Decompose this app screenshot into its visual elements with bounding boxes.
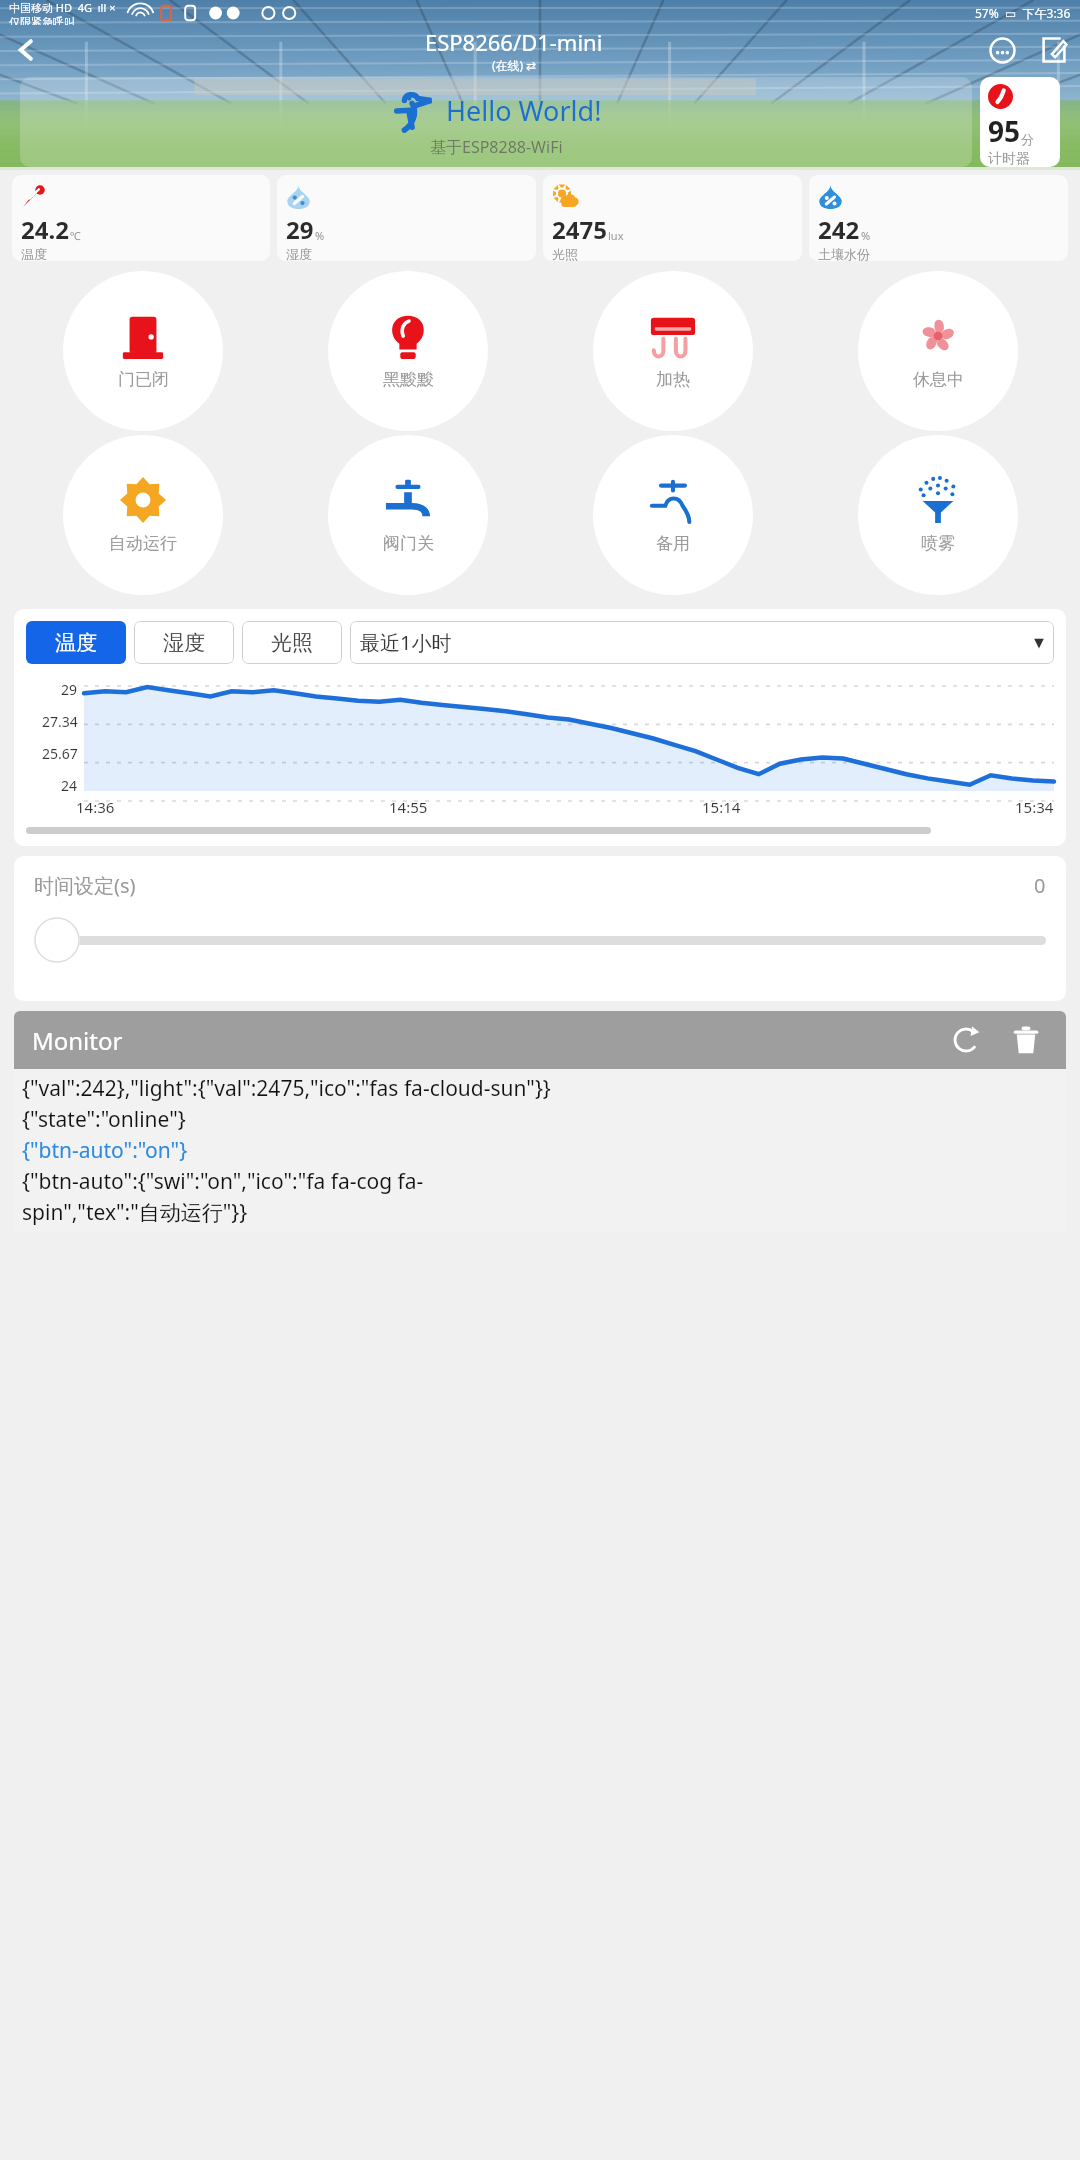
staticText: % — [861, 228, 871, 243]
button[interactable]: 加热 — [593, 271, 753, 431]
staticText: {"btn-auto":{"swi":"on","ico":"fa fa-cog… — [22, 1167, 424, 1196]
button[interactable]: 门已闭 — [63, 271, 223, 431]
staticText: Hello World! — [446, 92, 602, 129]
staticText: 15:34 — [1015, 797, 1054, 817]
staticText: lux — [608, 228, 624, 243]
button[interactable]: 自动运行 — [63, 435, 223, 595]
staticText: spin","tex":"自动运行"}} — [22, 1198, 248, 1227]
button[interactable]: 黑黢黢 — [328, 271, 488, 431]
staticText: ESP8266/D1-mini — [425, 27, 603, 57]
staticText: 黑黢黢 — [383, 369, 434, 390]
button[interactable]: 24.2 — [12, 175, 270, 261]
staticText: 29 — [286, 213, 314, 246]
staticText: 14:36 — [76, 797, 115, 817]
staticText: 光照 — [271, 630, 313, 656]
staticText: 2475 — [552, 213, 607, 246]
button[interactable]: 29 — [277, 175, 536, 261]
staticText: 自动运行 — [109, 533, 177, 554]
button[interactable]: 喷雾 — [858, 435, 1018, 595]
staticText: 29 — [61, 680, 78, 699]
staticText: 休息中 — [913, 369, 964, 390]
staticText: 温度 — [21, 246, 47, 261]
button[interactable]: 光照 — [242, 621, 342, 664]
staticText: 24 — [61, 776, 78, 795]
button[interactable]: Edit — [1028, 24, 1080, 76]
staticText: 14:55 — [389, 797, 428, 817]
staticText: 中国移动 HD 4G ıll × — [9, 0, 116, 15]
button[interactable]: More options — [976, 24, 1028, 76]
staticText: 备用 — [656, 533, 690, 554]
staticText: ▼ — [1034, 635, 1044, 650]
staticText: 喷雾 — [921, 533, 955, 554]
staticText: {"btn-auto":"on"} — [22, 1136, 188, 1165]
button[interactable] — [34, 917, 1046, 963]
staticText: 25.67 — [42, 744, 78, 763]
staticText: (在线) ⇄ — [492, 57, 537, 73]
staticText: 加热 — [656, 369, 690, 390]
button[interactable]: Back — [0, 24, 52, 76]
staticText: 阀门关 — [383, 533, 434, 554]
staticText: 温度 — [55, 630, 97, 656]
button[interactable]: 242 — [809, 175, 1068, 261]
staticText: 15:14 — [702, 797, 741, 817]
staticText: 242 — [818, 213, 860, 246]
staticText: 0 — [1034, 872, 1046, 899]
staticText: 湿度 — [286, 246, 312, 261]
button[interactable]: 阀门关 — [328, 435, 488, 595]
button[interactable]: Refresh — [944, 1018, 988, 1062]
staticText: ℃ — [70, 228, 81, 243]
staticText: 光照 — [552, 246, 578, 261]
staticText: 最近1小时 — [360, 629, 452, 656]
staticText: 95 — [988, 112, 1021, 150]
button[interactable]: 湿度 — [134, 621, 234, 664]
staticText: 湿度 — [163, 630, 205, 656]
button[interactable]: Clear — [1004, 1018, 1048, 1062]
button[interactable]: 2475 — [543, 175, 802, 261]
staticText: % — [315, 228, 325, 243]
button[interactable]: Hello World! — [20, 77, 972, 167]
staticText: 分 — [1021, 131, 1034, 147]
staticText: 土壤水份 — [818, 246, 870, 261]
staticText: 57% ▭ 下午3:36 — [975, 5, 1071, 21]
button[interactable]: 最近1小时 — [350, 621, 1054, 664]
staticText: 门已闭 — [118, 369, 169, 390]
staticText: 基于ESP8288-WiFi — [430, 136, 563, 158]
button[interactable]: 温度 — [26, 621, 126, 664]
staticText: 时间设定(s) — [34, 872, 136, 899]
staticText: {"val":242},"light":{"val":2475,"ico":"f… — [22, 1074, 551, 1103]
button[interactable]: 95 — [980, 77, 1060, 167]
staticText: {"state":"online"} — [22, 1105, 186, 1134]
button[interactable]: 备用 — [593, 435, 753, 595]
staticText: 计时器 — [988, 150, 1030, 167]
button[interactable]: 休息中 — [858, 271, 1018, 431]
staticText: 27.34 — [42, 712, 78, 731]
staticText: 仅限紧急呼叫 — [9, 15, 75, 25]
staticText: 24.2 — [21, 213, 69, 246]
staticText: Monitor — [32, 1024, 123, 1057]
